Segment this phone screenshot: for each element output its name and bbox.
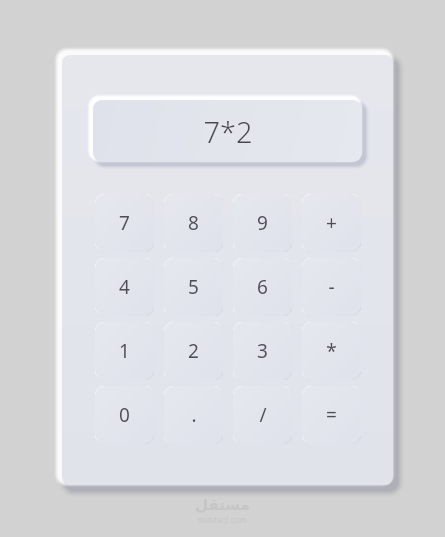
button[interactable]: - bbox=[302, 258, 361, 316]
staticText: 3 bbox=[257, 338, 268, 364]
staticText: 0 bbox=[119, 402, 130, 428]
button[interactable]: 9 bbox=[233, 194, 292, 252]
staticText: mostaql.com bbox=[198, 514, 247, 525]
staticText: 8 bbox=[188, 210, 199, 236]
button[interactable]: / bbox=[233, 386, 292, 444]
staticText: 5 bbox=[188, 274, 199, 300]
staticText: 6 bbox=[257, 274, 268, 300]
button[interactable]: + bbox=[302, 194, 361, 252]
staticText: 4 bbox=[119, 274, 130, 300]
button[interactable]: 5 bbox=[164, 258, 223, 316]
button[interactable]: 2 bbox=[164, 322, 223, 380]
staticText: 2 bbox=[188, 338, 199, 364]
staticText: = bbox=[326, 402, 337, 428]
button[interactable]: 4 bbox=[95, 258, 154, 316]
button[interactable]: 6 bbox=[233, 258, 292, 316]
button[interactable]: 1 bbox=[95, 322, 154, 380]
button[interactable]: = bbox=[302, 386, 361, 444]
staticText: - bbox=[328, 274, 335, 300]
button[interactable]: * bbox=[302, 322, 361, 380]
staticText: + bbox=[326, 210, 337, 236]
staticText: مستقل bbox=[195, 496, 250, 513]
button[interactable]: 7 bbox=[95, 194, 154, 252]
button[interactable]: 3 bbox=[233, 322, 292, 380]
staticText: 7 bbox=[119, 210, 130, 236]
button[interactable]: 0 bbox=[95, 386, 154, 444]
staticText: / bbox=[259, 402, 267, 428]
staticText: 7*2 bbox=[203, 112, 253, 151]
staticText: . bbox=[191, 402, 197, 428]
staticText: * bbox=[326, 338, 337, 364]
staticText: 1 bbox=[119, 338, 130, 364]
button[interactable]: 8 bbox=[164, 194, 223, 252]
staticText: 9 bbox=[257, 210, 268, 236]
button[interactable]: . bbox=[164, 386, 223, 444]
